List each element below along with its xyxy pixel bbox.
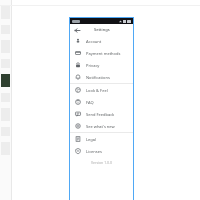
staticText: Licenses [86, 149, 102, 154]
button[interactable]: Account [70, 35, 133, 47]
button[interactable]: Licenses [70, 145, 133, 157]
button[interactable]: Look & Feel [70, 84, 133, 96]
staticText: Notifications [86, 75, 110, 80]
staticText: Send Feedback [86, 112, 115, 117]
button[interactable]: Notifications [70, 71, 133, 83]
staticText: Look & Feel [86, 88, 108, 93]
staticText: FAQ [86, 100, 94, 105]
staticText: See what's new [86, 124, 115, 129]
button[interactable]: Send Feedback [70, 108, 133, 120]
button[interactable]: Payment methods [70, 47, 133, 59]
button[interactable]: Legal [70, 133, 133, 145]
staticText: Privacy [86, 63, 100, 68]
button[interactable]: See what's new [70, 120, 133, 132]
staticText: Payment methods [86, 51, 121, 56]
staticText: Version 1.0.0 [70, 160, 133, 165]
staticText: Account [86, 39, 102, 44]
button[interactable]: FAQ [70, 96, 133, 108]
staticText: Settings [94, 27, 110, 32]
staticText: Legal [86, 137, 97, 142]
button[interactable]: Back [73, 26, 81, 34]
button[interactable]: Privacy [70, 59, 133, 71]
